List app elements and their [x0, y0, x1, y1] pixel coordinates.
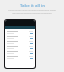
- button[interactable]: App preview: [4, 19, 36, 69]
- button[interactable]: [5, 50, 35, 54]
- button[interactable]: [5, 30, 35, 34]
- button[interactable]: [5, 55, 35, 59]
- staticText: Take it all in: [20, 3, 45, 9]
- button[interactable]: [5, 35, 35, 39]
- staticText: elit sed do eiusmod tempor incididunt: [12, 12, 52, 15]
- button[interactable]: [5, 40, 35, 44]
- staticText: Lorem ipsum dolor sit amet consectetur a…: [8, 9, 56, 12]
- button[interactable]: [5, 45, 35, 49]
